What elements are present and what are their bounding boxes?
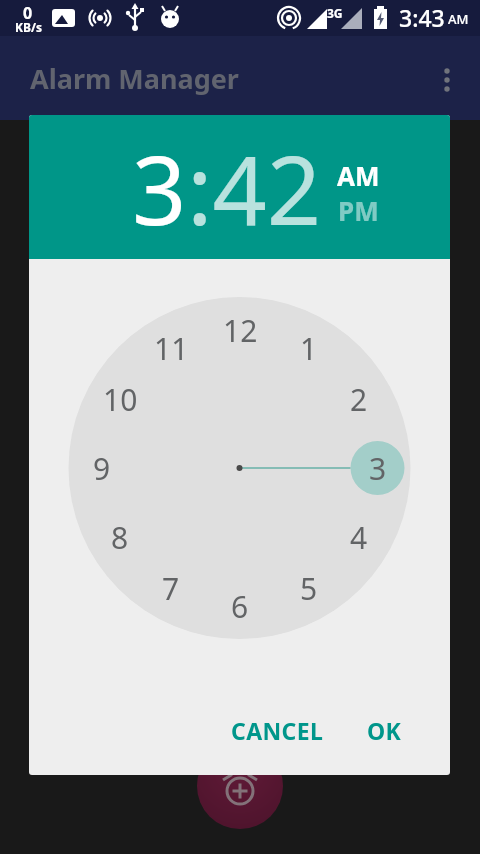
staticText: 3:43: [399, 2, 445, 32]
button[interactable]: PM: [325, 190, 391, 230]
button[interactable]: 8: [98, 515, 142, 559]
staticText: 12: [223, 310, 258, 351]
staticText: 11: [154, 328, 189, 369]
button[interactable]: [432, 54, 480, 102]
staticText: 7: [162, 568, 180, 609]
staticText: 9: [93, 448, 111, 489]
button[interactable]: 10: [98, 377, 142, 421]
staticText: 5: [300, 568, 318, 609]
button[interactable]: 2: [337, 377, 381, 421]
staticText: 3: [132, 123, 187, 252]
staticText: AM: [337, 158, 380, 193]
button[interactable]: 1: [287, 326, 331, 370]
staticText: :42: [187, 123, 322, 252]
staticText: CANCEL: [231, 715, 324, 746]
button[interactable]: 6: [218, 584, 262, 628]
button[interactable]: [197, 743, 283, 829]
button[interactable]: 5: [287, 566, 331, 610]
button[interactable]: OK: [349, 706, 419, 754]
staticText: 8: [111, 517, 129, 558]
staticText: 3: [369, 448, 387, 489]
button[interactable]: 7: [149, 566, 193, 610]
staticText: PM: [338, 193, 379, 228]
button[interactable]: CANCEL: [217, 706, 337, 754]
staticText: OK: [367, 715, 402, 746]
button[interactable]: 11: [149, 326, 193, 370]
staticText: KB/s: [15, 19, 42, 33]
staticText: 10: [103, 379, 138, 420]
staticText: Alarm Manager: [30, 60, 239, 97]
staticText: 2: [350, 379, 368, 420]
staticText: 0: [23, 2, 33, 20]
staticText: AM: [448, 10, 469, 28]
staticText: 1: [300, 328, 318, 369]
button[interactable]: 12: [218, 308, 262, 352]
button[interactable]: 9: [80, 446, 124, 490]
staticText: 3G: [327, 5, 343, 21]
staticText: 6: [231, 586, 249, 627]
button[interactable]: 4: [337, 515, 381, 559]
button[interactable]: 3: [356, 446, 400, 490]
staticText: 4: [350, 517, 368, 558]
button[interactable]: AM: [325, 155, 391, 195]
